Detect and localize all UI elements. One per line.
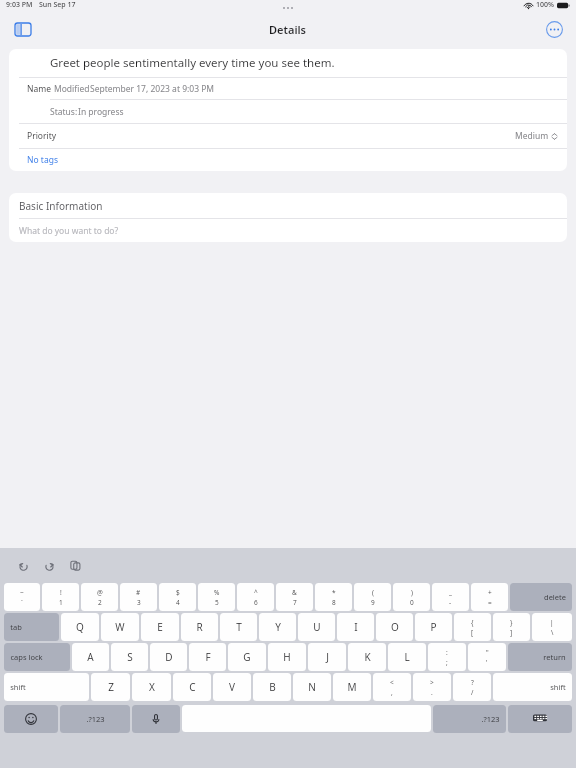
staticText: shift	[10, 682, 26, 692]
button[interactable]: ,	[373, 673, 411, 701]
staticText: `	[21, 598, 23, 607]
staticText: >	[430, 678, 434, 687]
staticText: 9:03 PM	[6, 0, 33, 10]
button[interactable]: caps lock	[4, 643, 70, 671]
button[interactable]: [	[454, 613, 491, 641]
button[interactable]: X	[132, 673, 171, 701]
button[interactable]: A	[72, 643, 109, 671]
staticText: S	[127, 650, 133, 664]
button[interactable]: 5	[198, 583, 235, 611]
button[interactable]: B	[253, 673, 291, 701]
button[interactable]: 8	[315, 583, 352, 611]
staticText: B	[269, 680, 276, 694]
button[interactable]: G	[228, 643, 266, 671]
staticText: |	[550, 618, 554, 627]
button[interactable]: K	[348, 643, 386, 671]
button[interactable]: Status:	[9, 100, 567, 123]
button[interactable]: More options	[542, 17, 566, 41]
staticText: September 17, 2023 at 9:03 PM	[90, 83, 215, 95]
button[interactable]: O	[376, 613, 413, 641]
staticText: _	[449, 588, 452, 597]
button[interactable]: Basic Information	[9, 193, 567, 218]
button[interactable]: Paste	[64, 554, 86, 576]
button[interactable]: Q	[61, 613, 99, 641]
button[interactable]: Show sidebar	[10, 16, 36, 42]
button[interactable]: Emoji	[4, 705, 58, 733]
button[interactable]: .?123	[433, 705, 506, 733]
button[interactable]: Y	[259, 613, 296, 641]
button[interactable]: '	[468, 643, 506, 671]
staticText: =	[488, 598, 492, 607]
button[interactable]: H	[268, 643, 306, 671]
button[interactable]: 2	[81, 583, 118, 611]
button[interactable]: .?123	[60, 705, 130, 733]
button[interactable]: Dictation	[132, 705, 180, 733]
button[interactable]: F	[189, 643, 226, 671]
button[interactable]: No tags	[9, 149, 567, 171]
button[interactable]: M	[333, 673, 371, 701]
button[interactable]: /	[453, 673, 491, 701]
button[interactable]: shift	[4, 673, 89, 701]
button[interactable]: E	[141, 613, 179, 641]
button[interactable]: return	[508, 643, 572, 671]
staticText: N	[308, 680, 316, 694]
button[interactable]: tab	[4, 613, 59, 641]
button[interactable]: T	[220, 613, 257, 641]
staticText: *	[332, 588, 336, 597]
button[interactable]: 7	[276, 583, 313, 611]
button[interactable]: What do you want to do?	[9, 219, 567, 242]
staticText: $	[176, 588, 180, 597]
button[interactable]: Undo	[12, 554, 34, 576]
staticText: What do you want to do?	[19, 225, 119, 237]
button[interactable]: ;	[428, 643, 466, 671]
button[interactable]: C	[173, 673, 211, 701]
staticText: tab	[10, 622, 22, 632]
button[interactable]: U	[298, 613, 335, 641]
staticText: P	[430, 620, 437, 634]
button[interactable]: \	[532, 613, 572, 641]
staticText: H	[283, 650, 291, 664]
button[interactable]: P	[415, 613, 452, 641]
staticText: :	[446, 648, 448, 657]
button[interactable]: shift	[493, 673, 572, 701]
button[interactable]: delete	[510, 583, 572, 611]
button[interactable]: Greet people sentimentally every time yo…	[9, 49, 567, 77]
button[interactable]: ]	[493, 613, 530, 641]
button[interactable]: R	[181, 613, 218, 641]
button[interactable]: 6	[237, 583, 274, 611]
staticText: -	[449, 598, 452, 607]
staticText: O	[391, 620, 399, 634]
button[interactable]: Name	[9, 78, 567, 99]
button[interactable]: `	[4, 583, 40, 611]
staticText: shift	[550, 682, 566, 692]
button[interactable]: -	[432, 583, 469, 611]
button[interactable]: S	[111, 643, 148, 671]
staticText: #	[136, 588, 141, 597]
button[interactable]: =	[471, 583, 508, 611]
staticText: Z	[108, 680, 114, 694]
staticText: J	[326, 650, 329, 664]
button[interactable]: 0	[393, 583, 430, 611]
button[interactable]: N	[293, 673, 331, 701]
button[interactable]: Redo	[38, 554, 60, 576]
button[interactable]: W	[101, 613, 139, 641]
button[interactable]: L	[388, 643, 426, 671]
button[interactable]: D	[150, 643, 187, 671]
staticText: X	[149, 680, 155, 694]
button[interactable]: Hide keyboard	[508, 705, 572, 733]
button[interactable]: Priority	[9, 124, 567, 148]
button[interactable]: V	[213, 673, 251, 701]
button[interactable]: I	[337, 613, 374, 641]
staticText: No tags	[27, 154, 58, 166]
staticText: Q	[76, 620, 84, 634]
button[interactable]: 9	[354, 583, 391, 611]
staticText: &	[292, 588, 297, 597]
button[interactable]: .	[413, 673, 451, 701]
button[interactable]: J	[308, 643, 346, 671]
button[interactable]: 3	[120, 583, 157, 611]
staticText: !	[60, 588, 62, 597]
button[interactable]: 1	[42, 583, 79, 611]
button[interactable]: 4	[159, 583, 196, 611]
button[interactable]: Z	[91, 673, 130, 701]
